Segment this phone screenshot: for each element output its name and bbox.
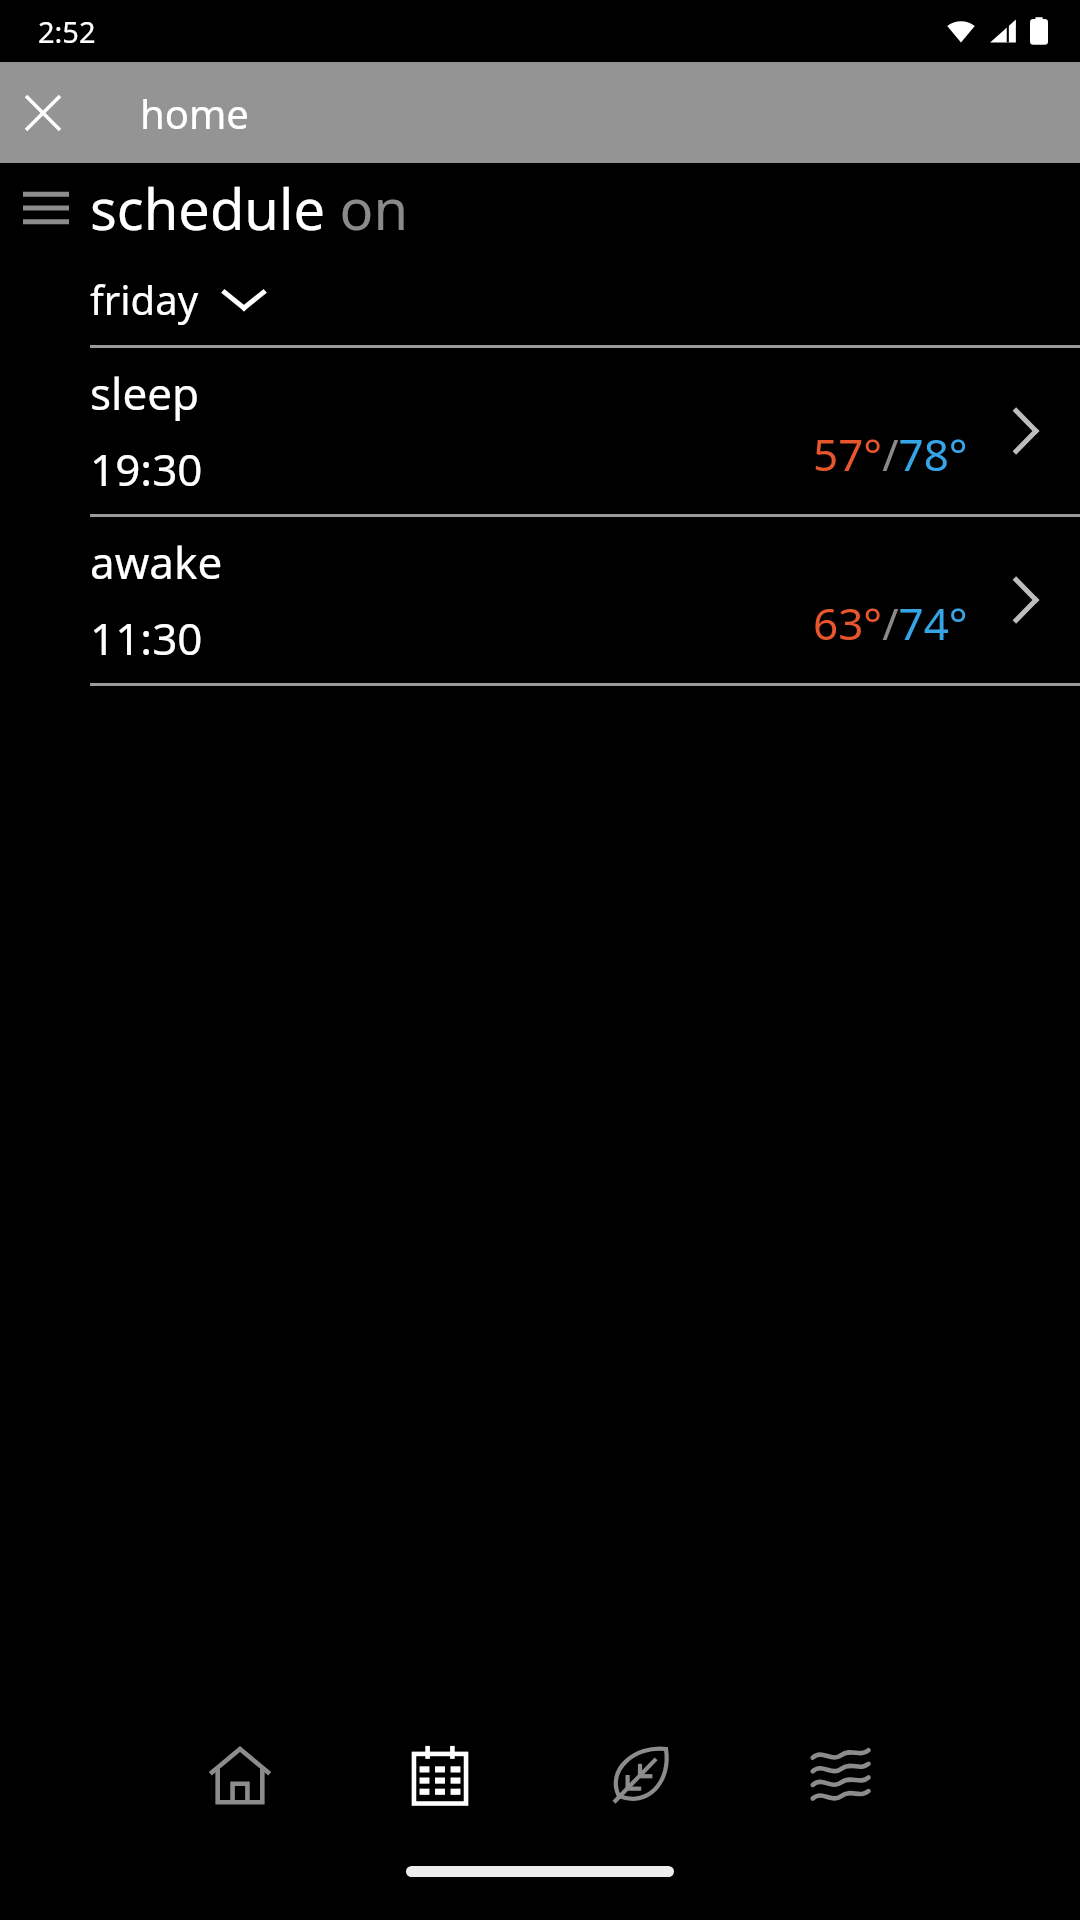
button[interactable]: Fan <box>740 1710 940 1840</box>
staticText: 19:30 <box>90 439 203 499</box>
button[interactable]: sleep <box>0 348 1080 514</box>
button[interactable]: Menu <box>18 180 74 236</box>
staticText: 63°/74° <box>813 593 968 653</box>
staticText: home <box>140 86 249 140</box>
button[interactable]: Eco <box>540 1710 740 1840</box>
staticText: 2:52 <box>38 12 96 51</box>
staticText: friday <box>90 272 199 326</box>
button[interactable]: Close <box>14 84 72 142</box>
button[interactable]: Home <box>140 1710 340 1840</box>
staticText: awake <box>90 532 223 592</box>
button[interactable]: awake <box>0 517 1080 683</box>
staticText: schedule on <box>90 170 409 246</box>
staticText: 57°/78° <box>813 424 968 484</box>
button[interactable]: friday <box>90 253 1080 345</box>
button[interactable]: Schedule <box>340 1710 540 1840</box>
staticText: sleep <box>90 363 200 423</box>
staticText: 11:30 <box>90 608 203 668</box>
